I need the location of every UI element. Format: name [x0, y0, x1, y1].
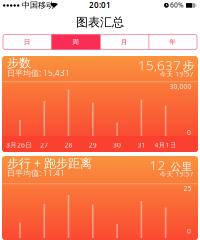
staticText: 60% [170, 1, 184, 9]
staticText: 0 [187, 128, 191, 137]
staticText: 12 [149, 156, 165, 174]
staticText: 周 [72, 38, 79, 46]
staticText: 年 [169, 38, 176, 46]
button[interactable]: 日 [3, 34, 51, 49]
staticText: 今天 19:57 [159, 170, 193, 178]
staticText: 步行 + 跑步距离 [7, 155, 92, 171]
button[interactable]: 年 [148, 34, 197, 49]
staticText: 中国移动 [22, 0, 54, 10]
staticText: 公里 [170, 160, 192, 173]
button[interactable]: 周 [51, 34, 100, 49]
staticText: 图表汇总 [76, 15, 124, 29]
staticText: 日 [24, 38, 31, 46]
staticText: 15,637 [138, 56, 181, 74]
button[interactable]: 月 [100, 34, 148, 49]
staticText: 今天 19:57 [159, 70, 193, 78]
staticText: 28 [64, 141, 72, 149]
staticText: 29 [89, 141, 97, 149]
staticText: 日平均值: 11.41 [7, 168, 65, 178]
staticText: 步 [182, 59, 194, 73]
staticText: 月 [121, 38, 128, 46]
staticText: 步数 [7, 56, 31, 70]
staticText: 30,000 [169, 82, 191, 91]
staticText: 20:01 [89, 0, 111, 10]
staticText: 31 [137, 141, 145, 149]
staticText: 27 [40, 141, 48, 149]
staticText: 4月1日 [155, 141, 177, 149]
button[interactable]: 步行 + 跑步距离 [2, 156, 198, 240]
staticText: 3月26日 [6, 141, 32, 149]
button[interactable]: 步数 [2, 56, 198, 152]
staticText: 日平均值: 15,431 [7, 68, 70, 78]
staticText: 0 [187, 227, 191, 235]
staticText: 25 [183, 184, 191, 193]
staticText: 30 [113, 141, 121, 149]
